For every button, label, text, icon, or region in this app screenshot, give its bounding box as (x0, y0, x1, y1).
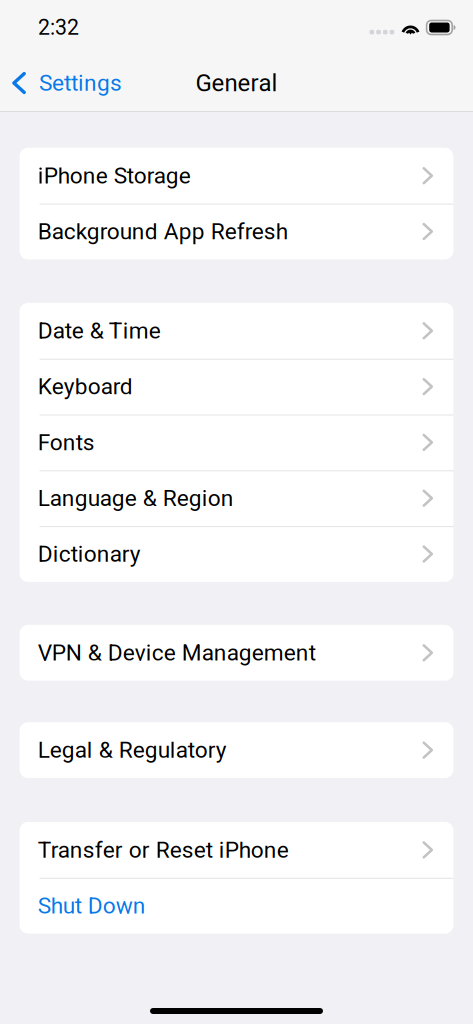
button[interactable]: Background App Refresh (20, 204, 453, 259)
staticText: Language & Region (38, 485, 234, 511)
button[interactable]: Legal & Regulatory (20, 722, 453, 778)
staticText: General (195, 69, 277, 97)
staticText: VPN & Device Management (38, 639, 316, 666)
button[interactable]: Language & Region (20, 470, 453, 526)
staticText: Settings (39, 70, 122, 96)
staticText: Legal & Regulatory (38, 737, 227, 763)
staticText: 2:32 (38, 15, 79, 40)
staticText: Transfer or Reset iPhone (38, 837, 289, 863)
button[interactable]: Keyboard (20, 359, 453, 414)
staticText: Dictionary (38, 541, 141, 567)
staticText: Date & Time (38, 317, 161, 344)
staticText: Background App Refresh (38, 218, 288, 245)
button[interactable]: Shut Down (20, 878, 453, 934)
button[interactable]: Dictionary (20, 526, 453, 582)
button[interactable]: Fonts (20, 414, 453, 470)
staticText: Keyboard (38, 373, 133, 400)
button[interactable]: iPhone Storage (20, 148, 453, 204)
button[interactable]: VPN & Device Management (20, 625, 453, 681)
button[interactable]: Back to Settings (0, 60, 132, 106)
staticText: iPhone Storage (38, 162, 191, 189)
button[interactable]: Date & Time (20, 303, 453, 359)
staticText: Fonts (38, 429, 95, 456)
staticText: Shut Down (38, 892, 146, 919)
button[interactable]: Transfer or Reset iPhone (20, 822, 453, 878)
